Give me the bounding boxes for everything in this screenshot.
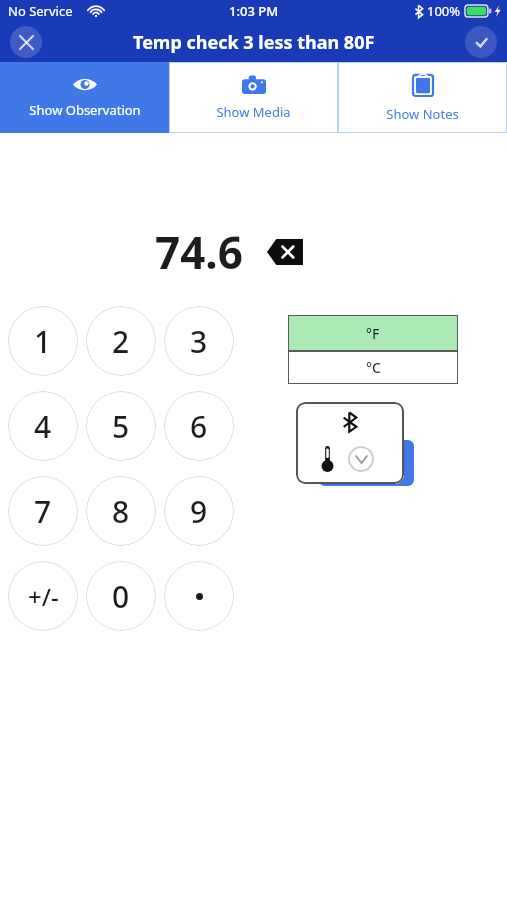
button[interactable]: 1 <box>8 306 78 376</box>
staticText: cancel <box>340 451 394 476</box>
button[interactable]: 0 <box>86 561 156 631</box>
staticText: 2 <box>112 321 130 362</box>
button[interactable]: 9 <box>164 476 234 546</box>
button[interactable]: °F <box>288 315 458 351</box>
staticText: 4 <box>34 406 52 447</box>
staticText: Show Media <box>216 103 291 121</box>
button[interactable] <box>164 561 234 631</box>
staticText: 6 <box>190 406 208 447</box>
staticText: 1 <box>34 321 52 362</box>
staticText: 8 <box>112 491 130 532</box>
staticText: °C <box>366 358 381 377</box>
staticText: No Service <box>8 2 73 20</box>
button[interactable]: Show Notes <box>338 62 507 133</box>
staticText: 3 <box>190 321 208 362</box>
button[interactable]: Confirm <box>465 26 497 58</box>
button[interactable]: 8 <box>86 476 156 546</box>
button[interactable]: +/- <box>8 561 78 631</box>
button[interactable]: 7 <box>8 476 78 546</box>
button[interactable]: 4 <box>8 391 78 461</box>
button[interactable]: 6 <box>164 391 234 461</box>
staticText: 0 <box>112 576 130 617</box>
staticText: 9 <box>190 491 208 532</box>
staticText: 7 <box>34 491 52 532</box>
button[interactable]: Delete <box>265 237 305 267</box>
staticText: Show Notes <box>386 105 459 123</box>
button[interactable]: Close <box>10 26 42 58</box>
staticText: 74.6 <box>155 222 243 282</box>
button[interactable]: 3 <box>164 306 234 376</box>
other: Bluetooth <box>343 412 357 432</box>
button[interactable]: Show Observation <box>0 62 169 133</box>
button[interactable]: cancel <box>319 440 414 486</box>
staticText: Show Observation <box>29 101 141 119</box>
button[interactable]: 2 <box>86 306 156 376</box>
staticText: 5 <box>112 406 130 447</box>
button[interactable]: Show Media <box>169 62 338 133</box>
staticText: +/- <box>28 580 59 613</box>
staticText: 1:03 PM <box>229 2 279 20</box>
button[interactable]: °C <box>288 351 458 384</box>
button[interactable]: 5 <box>86 391 156 461</box>
staticText: 100% <box>427 2 461 20</box>
button[interactable]: Expand <box>348 446 374 472</box>
staticText: °F <box>366 324 380 343</box>
staticText: Temp check 3 less than 80F <box>133 30 375 55</box>
